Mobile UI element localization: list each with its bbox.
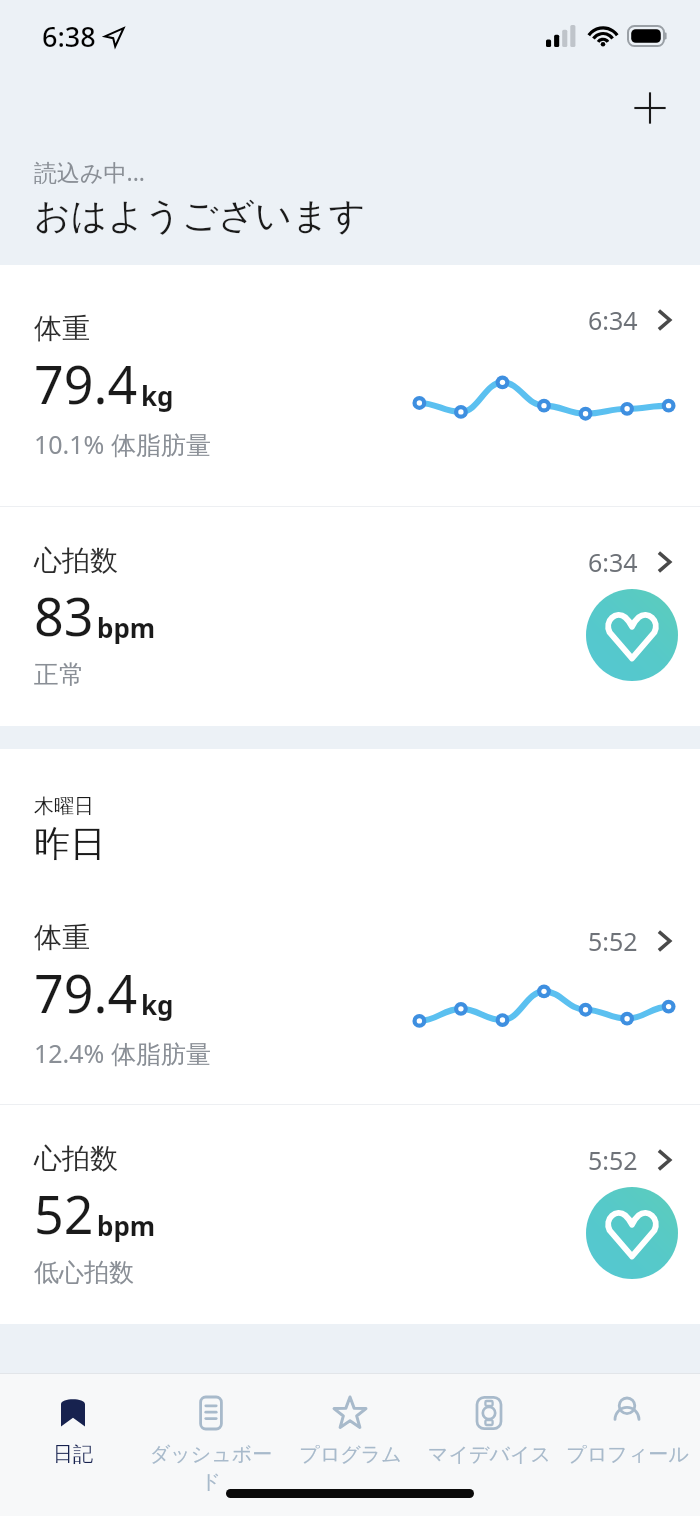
staticText: 読込み中... — [34, 156, 146, 187]
staticText: kg — [141, 987, 174, 1022]
staticText: 低心拍数 — [34, 1257, 134, 1288]
button[interactable]: マイデバイス — [423, 1386, 555, 1471]
staticText: 5:52 — [588, 1143, 638, 1177]
staticText: 52 — [34, 1178, 94, 1249]
staticText: プロフィール — [566, 1442, 689, 1467]
staticText: 6:34 — [588, 303, 638, 337]
other: Heart rate — [586, 1187, 678, 1279]
staticText: bpm — [97, 1208, 156, 1243]
staticText: 正常 — [34, 659, 84, 690]
other: Heart rate — [586, 589, 678, 681]
staticText: 5:52 — [588, 924, 638, 958]
button[interactable]: プログラム — [284, 1386, 416, 1471]
button[interactable]: 6:34 — [0, 265, 700, 506]
staticText: 体重 — [34, 311, 90, 346]
staticText: 12.4% 体脂肪量 — [34, 1036, 211, 1070]
staticText: 昨日 — [34, 821, 106, 866]
staticText: ダッシュボード — [145, 1442, 277, 1494]
button[interactable]: 6:34 — [0, 507, 700, 726]
staticText: 心拍数 — [34, 543, 118, 578]
button[interactable]: プロフィール — [561, 1386, 693, 1471]
staticText: 日記 — [53, 1442, 93, 1467]
staticText: 83 — [34, 580, 94, 651]
staticText: 体重 — [34, 920, 90, 955]
staticText: 79.4 — [34, 957, 138, 1028]
staticText: 木曜日 — [34, 794, 94, 819]
button[interactable]: 日記 — [7, 1386, 139, 1471]
staticText: 6:38 — [42, 18, 96, 55]
staticText: bpm — [97, 610, 156, 645]
staticText: おはようございます — [34, 193, 366, 238]
button[interactable]: 5:52 — [0, 1105, 700, 1324]
staticText: 心拍数 — [34, 1141, 118, 1176]
staticText: 6:34 — [588, 545, 638, 579]
staticText: 79.4 — [34, 348, 138, 419]
button[interactable]: Add — [624, 82, 676, 134]
staticText: kg — [141, 378, 174, 413]
staticText: 10.1% 体脂肪量 — [34, 427, 211, 461]
staticText: プログラム — [299, 1442, 402, 1467]
button[interactable]: ダッシュボード — [145, 1386, 277, 1498]
staticText: マイデバイス — [428, 1442, 551, 1467]
button[interactable]: 5:52 — [0, 886, 700, 1104]
